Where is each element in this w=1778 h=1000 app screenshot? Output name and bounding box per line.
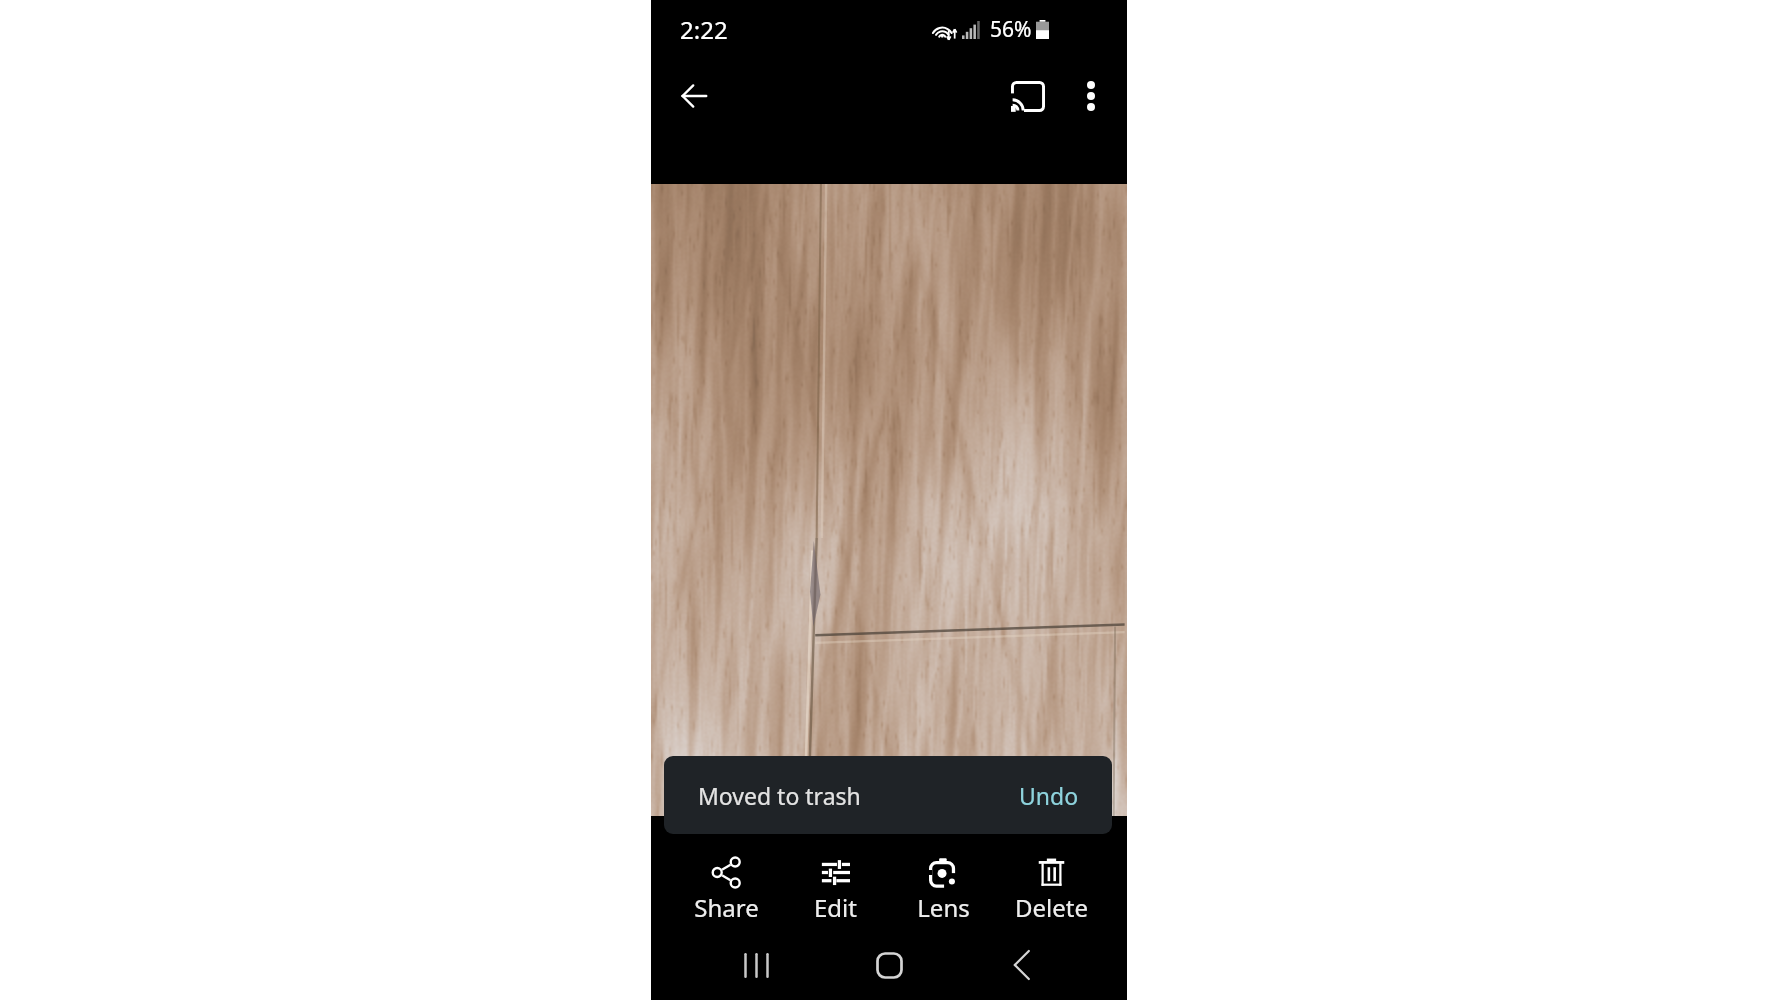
button[interactable]: Edit <box>781 816 889 930</box>
staticText: Moved to trash <box>698 780 861 811</box>
button[interactable]: Share <box>672 816 780 930</box>
button[interactable]: Back <box>992 935 1052 995</box>
button[interactable]: Home <box>859 935 919 995</box>
staticText: Edit <box>814 891 857 924</box>
button[interactable]: Lens <box>889 816 997 930</box>
button[interactable]: Back <box>667 69 721 123</box>
staticText: Delete <box>1015 891 1088 924</box>
staticText: 56% <box>990 15 1032 44</box>
button[interactable]: More options <box>1064 69 1118 123</box>
button[interactable]: Photo <box>651 184 1127 816</box>
button[interactable]: Cast <box>1001 69 1055 123</box>
staticText: Undo <box>1019 780 1079 811</box>
staticText: Share <box>694 891 759 924</box>
staticText: Lens <box>917 891 970 924</box>
button[interactable]: Delete <box>997 816 1105 930</box>
button[interactable]: Undo <box>1015 772 1083 819</box>
button[interactable]: Recents <box>726 935 786 995</box>
staticText: 2:22 <box>680 13 728 46</box>
